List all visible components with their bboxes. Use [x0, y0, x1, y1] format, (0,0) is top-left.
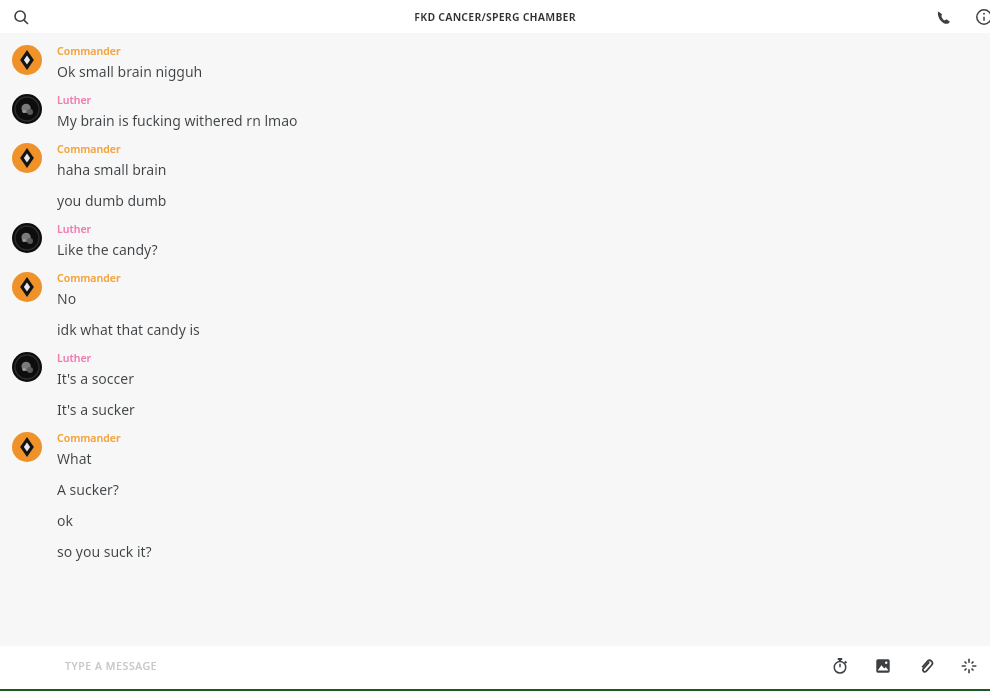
button[interactable]: Commander	[0, 431, 990, 573]
staticText: Luther	[57, 351, 92, 365]
staticText: Luther	[57, 93, 92, 107]
button[interactable]: Commander	[0, 142, 990, 222]
staticText: so you suck it?	[57, 542, 152, 561]
staticText: ok	[57, 511, 73, 530]
staticText: idk what that candy is	[57, 320, 200, 339]
button[interactable]: Search	[7, 3, 35, 31]
button[interactable]: Luther	[0, 222, 990, 271]
button[interactable]: Luther	[0, 351, 990, 431]
staticText: My brain is fucking withered rn lmao	[57, 111, 298, 130]
staticText: No	[57, 289, 77, 308]
button[interactable]: Attach file	[913, 653, 939, 679]
staticText: Commander	[57, 431, 121, 445]
staticText: Commander	[57, 44, 121, 58]
staticText: Commander	[57, 271, 121, 285]
button[interactable]: Luther	[0, 93, 990, 142]
staticText: Like the candy?	[57, 240, 158, 259]
button[interactable]: Commander	[0, 271, 990, 351]
staticText: Ok small brain nigguh	[57, 62, 203, 81]
staticText: Commander	[57, 142, 121, 156]
button[interactable]: Timer	[827, 653, 853, 679]
staticText: Luther	[57, 222, 92, 236]
staticText: It's a soccer	[57, 369, 134, 388]
staticText: It's a sucker	[57, 400, 135, 419]
button[interactable]: Effects	[956, 653, 982, 679]
staticText: you dumb dumb	[57, 191, 167, 210]
staticText: haha small brain	[57, 160, 167, 179]
button[interactable]: Image	[870, 653, 896, 679]
staticText: What	[57, 449, 92, 468]
button[interactable]: Commander	[0, 44, 990, 93]
button[interactable]: TYPE A MESSAGE	[0, 646, 700, 686]
button[interactable]: Call	[929, 3, 957, 31]
staticText: A sucker?	[57, 480, 119, 499]
staticText: TYPE A MESSAGE	[65, 659, 158, 673]
staticText: FKD CANCER/SPERG CHAMBER	[414, 10, 576, 24]
button[interactable]: Info	[970, 3, 990, 31]
